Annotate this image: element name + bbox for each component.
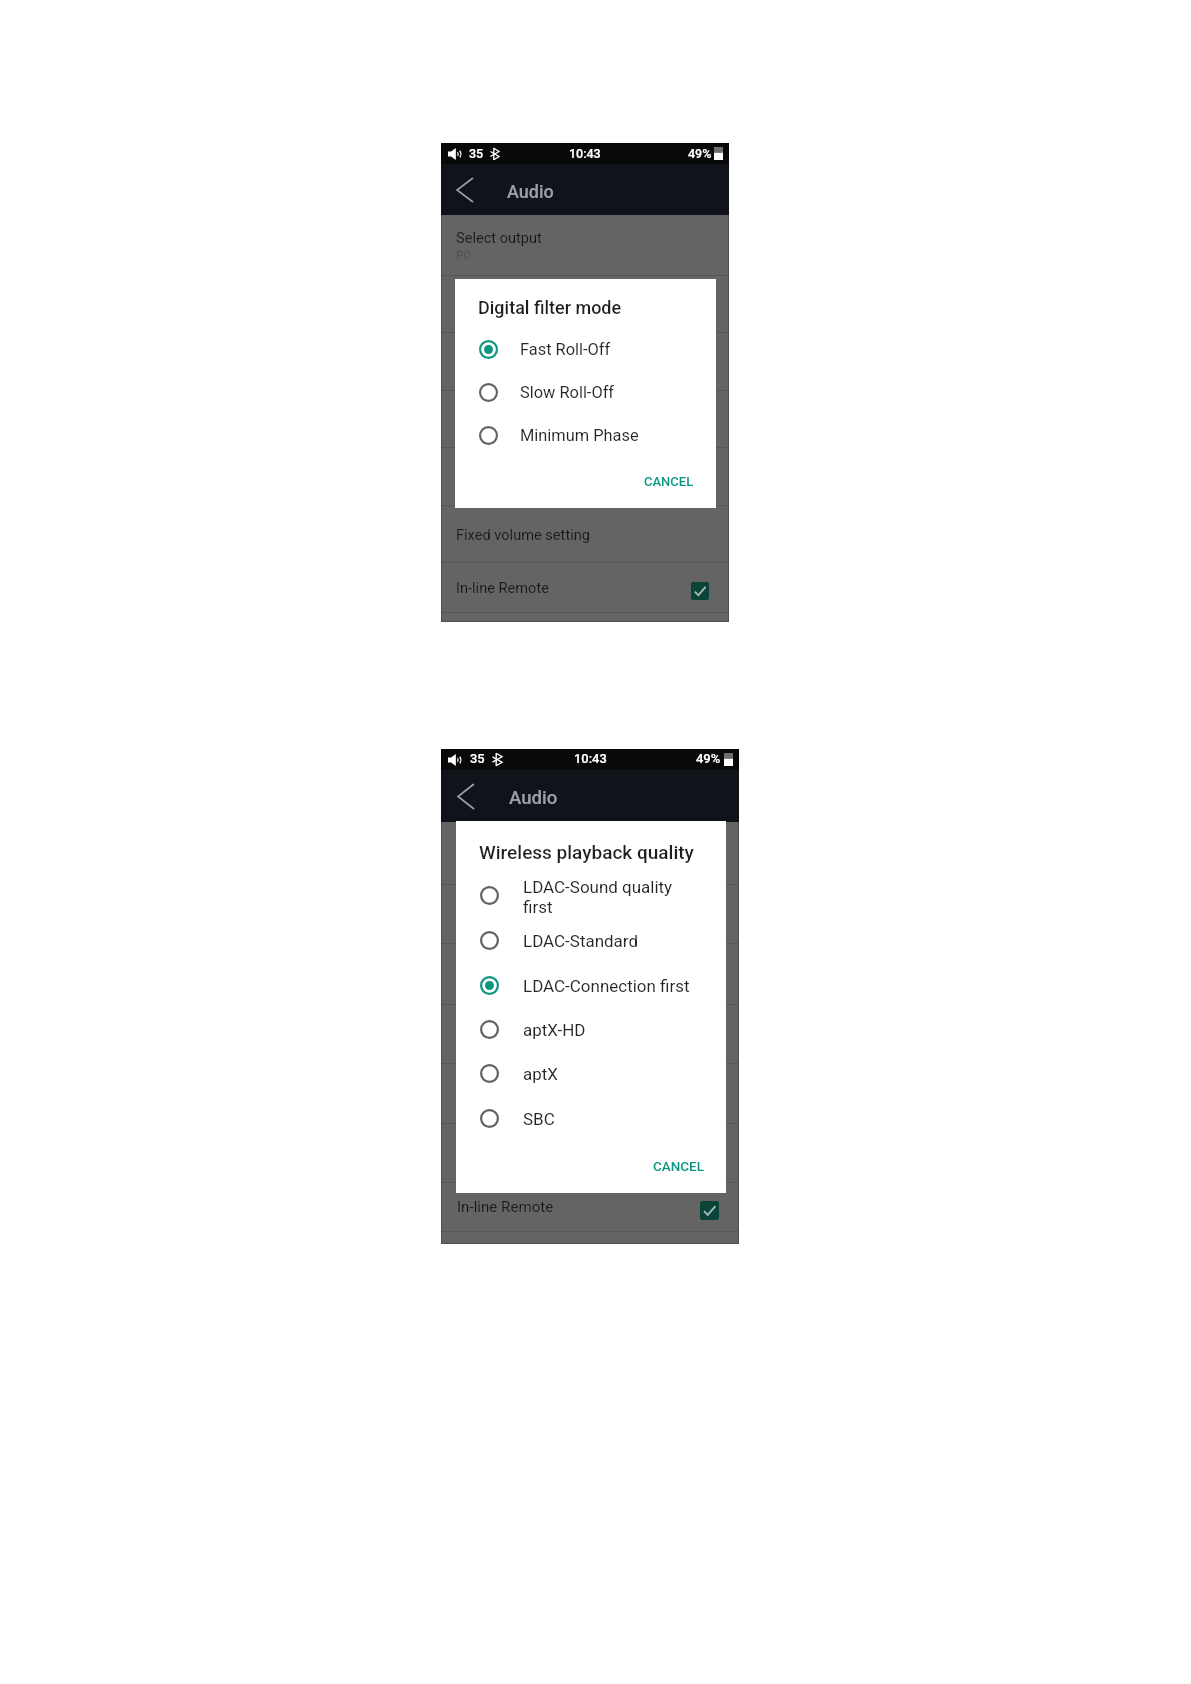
staticText: 35 <box>469 146 484 161</box>
button[interactable]: Back <box>441 170 481 210</box>
button[interactable]: LDAC-Connection first <box>456 956 726 1016</box>
button[interactable]: Minimum Phase <box>455 405 716 465</box>
staticText: PO <box>456 248 472 261</box>
button[interactable]: aptX-HD <box>456 1000 726 1060</box>
button[interactable]: LDAC-Standard <box>456 911 726 971</box>
staticText: LDAC-Connection first <box>523 976 690 996</box>
button[interactable]: In-line Remote, enabled <box>700 1201 719 1220</box>
button[interactable]: Wireless playback quality <box>441 333 729 389</box>
staticText: Digital filter mode <box>478 297 622 318</box>
staticText: CANCEL <box>653 1159 704 1175</box>
button[interactable]: Digital filter mode <box>441 885 739 943</box>
staticText: Slow Roll-Off <box>520 383 615 402</box>
staticText: Select output <box>456 229 542 246</box>
staticText: 49% <box>696 751 721 766</box>
staticText: 49% <box>688 146 712 161</box>
button[interactable]: In-line Remote <box>441 1183 739 1231</box>
button[interactable]: Select output <box>441 822 739 884</box>
button[interactable]: Volume limit <box>441 448 729 504</box>
staticText: Minimum Phase <box>520 426 639 445</box>
staticText: Audio <box>509 787 558 809</box>
button[interactable]: SBC <box>456 1089 726 1149</box>
button[interactable]: Wireless playback quality <box>441 944 739 1004</box>
button[interactable]: In-line Remote <box>441 563 729 612</box>
button[interactable]: CANCEL <box>622 465 716 498</box>
button[interactable]: Digital filter mode <box>441 276 729 332</box>
staticText: Digital filter mode <box>456 288 571 305</box>
staticText: Volume limit <box>457 1076 542 1094</box>
staticText: Wireless playback quality <box>456 345 620 362</box>
button[interactable]: Sound effects <box>441 1005 739 1063</box>
button[interactable]: In-line Remote, enabled <box>691 582 709 600</box>
staticText: In-line Remote <box>457 1198 554 1216</box>
staticText: Fixed volume setting <box>456 526 590 543</box>
staticText: SBC <box>523 1109 555 1129</box>
staticText: Fast Roll-Off <box>456 307 520 320</box>
staticText: aptX-HD <box>523 1020 586 1040</box>
staticText: Digital filter mode <box>457 897 576 915</box>
button[interactable]: CANCEL <box>631 1150 726 1184</box>
staticText: 35 <box>470 751 485 766</box>
staticText: LDAC-Connection first <box>457 977 574 991</box>
staticText: LDAC-Standard <box>523 931 639 951</box>
staticText: Sound effects <box>457 1017 551 1035</box>
staticText: In-line Remote <box>456 579 549 596</box>
staticText: LDAC-Sound quality first <box>523 877 687 917</box>
button[interactable]: Back <box>441 776 482 817</box>
button[interactable]: LDAC-Sound quality first <box>456 866 726 926</box>
button[interactable]: Select output <box>441 215 729 275</box>
staticText: Audio <box>507 181 554 202</box>
button[interactable]: Fast Roll-Off <box>455 319 716 379</box>
button[interactable]: aptX <box>456 1044 726 1104</box>
staticText: Select output <box>457 836 546 854</box>
button[interactable]: Fixed volume setting <box>441 1124 739 1182</box>
staticText: Wireless playback quality <box>479 841 694 863</box>
button[interactable]: Fixed volume setting <box>441 506 729 562</box>
staticText: Fast Roll-Off <box>520 340 611 359</box>
button[interactable]: Volume limit <box>441 1064 739 1122</box>
staticText: CANCEL <box>644 474 694 489</box>
staticText: 10:43 <box>569 146 601 161</box>
button[interactable]: Sound effects <box>441 391 729 447</box>
button[interactable]: Slow Roll-Off <box>455 362 716 422</box>
staticText: 10:43 <box>574 751 607 766</box>
staticText: aptX <box>523 1064 558 1084</box>
